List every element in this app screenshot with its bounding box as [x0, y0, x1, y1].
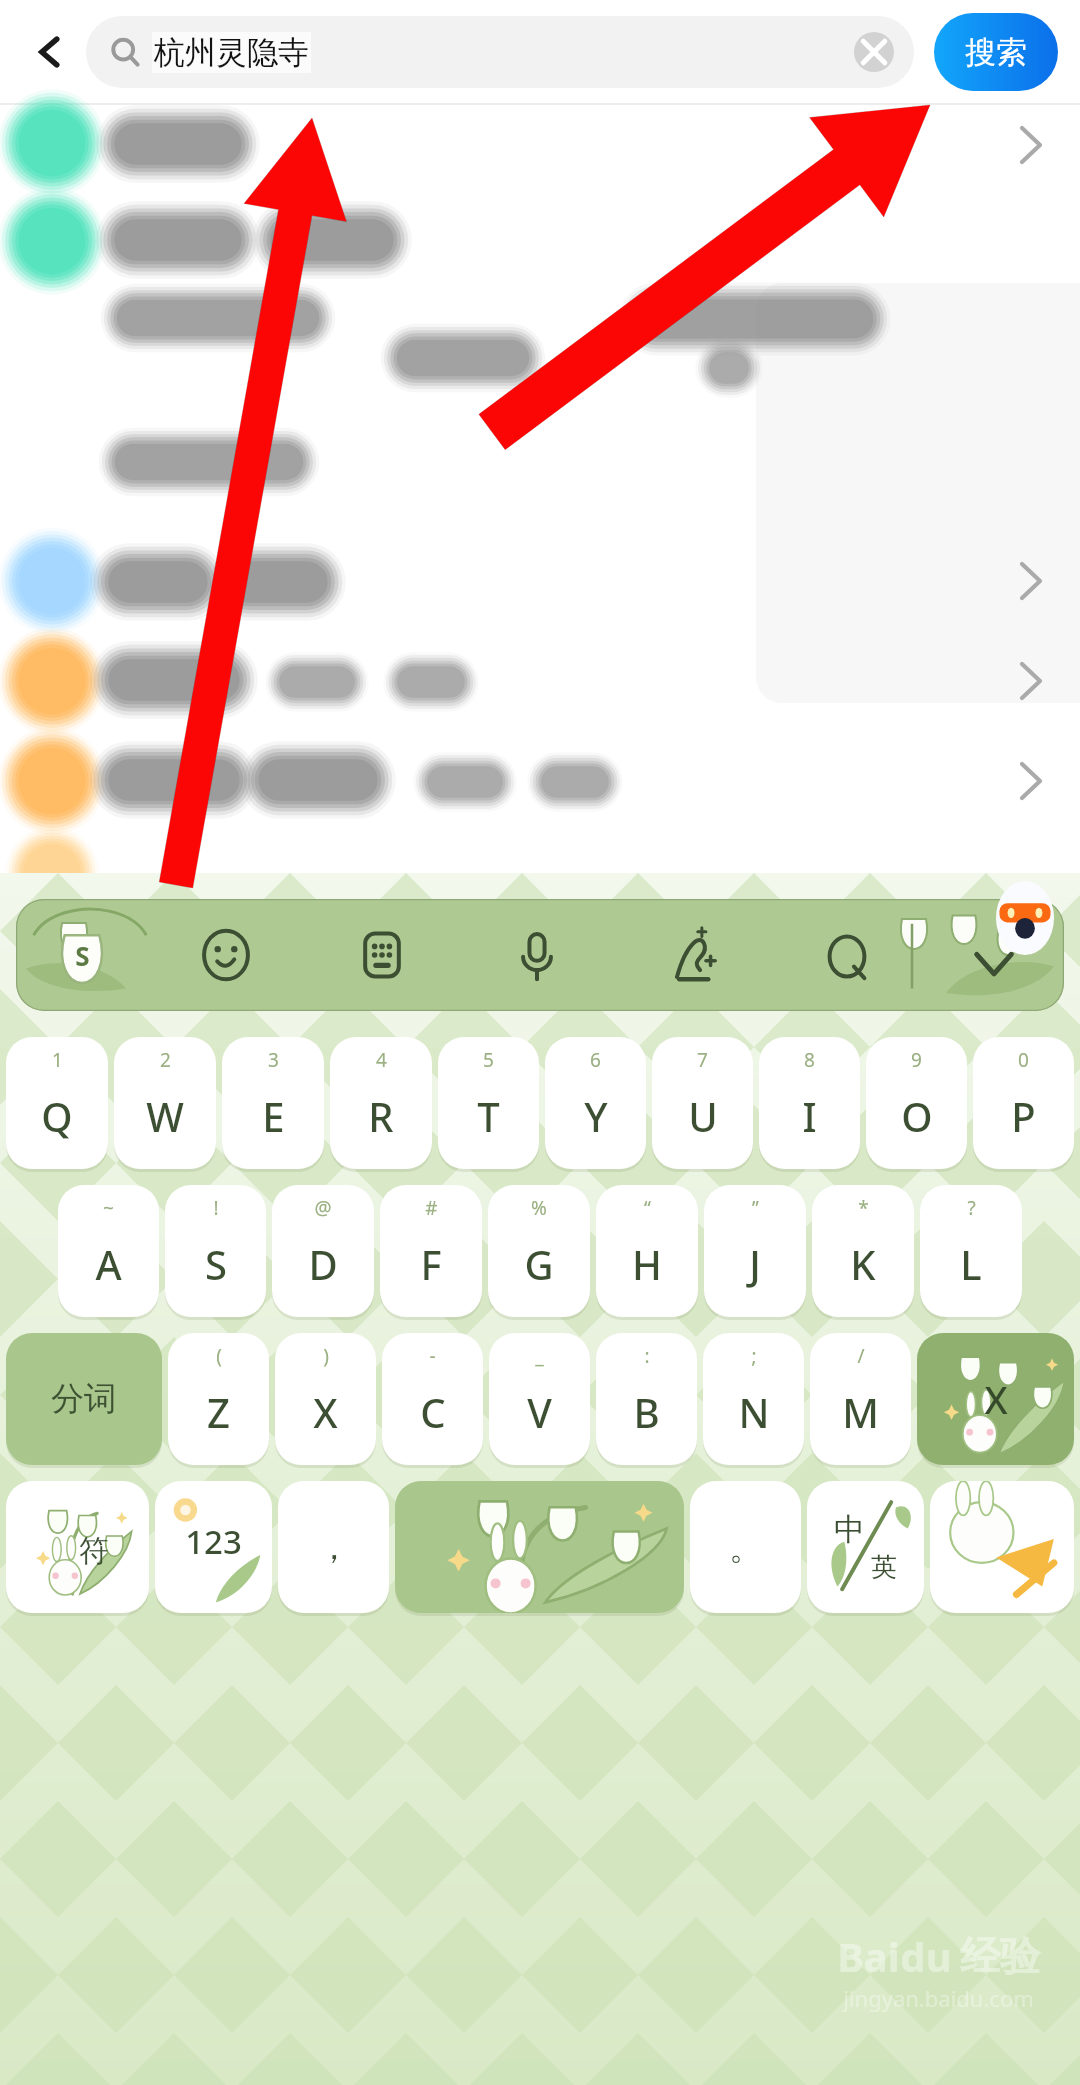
staticText: 123: [185, 1519, 242, 1564]
staticText: B: [633, 1385, 660, 1439]
button[interactable]: Handwriting: [614, 899, 769, 1011]
staticText: V: [527, 1385, 552, 1439]
button[interactable]: Symbols: [6, 1481, 149, 1613]
staticText: 搜索: [965, 33, 1027, 72]
button[interactable]: @: [272, 1185, 374, 1317]
button[interactable]: 9: [866, 1037, 967, 1169]
button[interactable]: 3: [222, 1037, 324, 1169]
button[interactable]: Keyboard layout: [304, 899, 459, 1011]
staticText: 7: [697, 1047, 708, 1073]
staticText: du: [900, 1929, 952, 1983]
staticText: Bai: [837, 1929, 900, 1983]
button[interactable]: ): [275, 1333, 376, 1465]
button[interactable]: Back: [14, 16, 86, 88]
button[interactable]: 5: [438, 1037, 539, 1169]
button[interactable]: 搜索: [934, 13, 1058, 91]
button[interactable]: 2: [114, 1037, 216, 1169]
button[interactable]: !: [165, 1185, 266, 1317]
button[interactable]: Space: [395, 1481, 684, 1613]
button[interactable]: 6: [545, 1037, 646, 1169]
staticText: Q: [41, 1089, 73, 1143]
staticText: E: [262, 1089, 285, 1143]
button[interactable]: ;: [703, 1333, 804, 1465]
button[interactable]: Hide keyboard: [924, 899, 1064, 1011]
staticText: X: [984, 1373, 1008, 1425]
staticText: X: [313, 1385, 338, 1439]
button[interactable]: (: [168, 1333, 269, 1465]
staticText: Z: [207, 1385, 230, 1439]
staticText: 3: [268, 1047, 279, 1073]
staticText: 2: [160, 1047, 171, 1073]
button[interactable]: Voice input: [459, 899, 614, 1011]
button[interactable]: “: [596, 1185, 698, 1317]
staticText: J: [749, 1237, 761, 1291]
button[interactable]: 杭州灵隐寺: [86, 16, 914, 88]
staticText: /: [857, 1343, 865, 1369]
staticText: 1: [52, 1047, 63, 1073]
staticText: 经验: [960, 1931, 1040, 1981]
button[interactable]: -: [382, 1333, 483, 1465]
staticText: 4: [376, 1047, 387, 1073]
button[interactable]: #: [380, 1185, 482, 1317]
button[interactable]: Chinese English toggle: [807, 1481, 924, 1613]
staticText: 0: [1018, 1047, 1029, 1073]
staticText: S: [205, 1237, 227, 1291]
staticText: 英: [871, 1551, 897, 1584]
staticText: ): [323, 1343, 329, 1369]
staticText: 。: [729, 1526, 763, 1569]
button[interactable]: 4: [330, 1037, 432, 1169]
staticText: 5: [483, 1047, 494, 1073]
staticText: @: [314, 1195, 332, 1221]
button[interactable]: 分词: [6, 1333, 162, 1465]
button[interactable]: /: [810, 1333, 911, 1465]
button[interactable]: 7: [652, 1037, 753, 1169]
staticText: T: [477, 1089, 500, 1143]
button[interactable]: 。: [690, 1481, 801, 1613]
button[interactable]: Delete: [917, 1333, 1074, 1465]
button[interactable]: Clear text: [852, 30, 896, 74]
staticText: R: [368, 1089, 394, 1143]
staticText: H: [632, 1237, 662, 1291]
staticText: (: [216, 1343, 222, 1369]
button[interactable]: Enter: [930, 1481, 1074, 1613]
staticText: O: [901, 1089, 933, 1143]
button[interactable]: ~: [58, 1185, 159, 1317]
staticText: “: [644, 1195, 651, 1221]
button[interactable]: ?: [920, 1185, 1022, 1317]
button[interactable]: 1: [6, 1037, 108, 1169]
button[interactable]: Emoji: [148, 899, 304, 1011]
staticText: #: [425, 1195, 438, 1221]
button[interactable]: %: [488, 1185, 590, 1317]
staticText: K: [850, 1237, 876, 1291]
staticText: F: [420, 1237, 442, 1291]
staticText: 杭州灵隐寺: [154, 33, 309, 72]
staticText: %: [531, 1195, 547, 1221]
staticText: ~: [103, 1195, 114, 1221]
button[interactable]: *: [812, 1185, 914, 1317]
staticText: I: [802, 1089, 817, 1143]
button[interactable]: 8: [759, 1037, 860, 1169]
staticText: Y: [584, 1089, 608, 1143]
button[interactable]: _: [489, 1333, 590, 1465]
button[interactable]: Numbers: [155, 1481, 272, 1613]
staticText: D: [308, 1237, 338, 1291]
staticText: _: [535, 1343, 544, 1369]
staticText: A: [95, 1237, 122, 1291]
staticText: 9: [911, 1047, 922, 1073]
staticText: S: [75, 938, 90, 973]
staticText: 8: [804, 1047, 815, 1073]
button[interactable]: Search: [769, 899, 924, 1011]
staticText: 符: [79, 1532, 109, 1570]
button[interactable]: 0: [973, 1037, 1074, 1169]
staticText: ?: [967, 1195, 976, 1221]
button[interactable]: ”: [704, 1185, 806, 1317]
staticText: -: [429, 1343, 436, 1369]
staticText: C: [420, 1385, 446, 1439]
staticText: jingyan.baidu.com: [843, 1983, 1034, 2013]
button[interactable]: Sogou input menu: [16, 899, 148, 1011]
button[interactable]: ，: [278, 1481, 389, 1613]
button[interactable]: Assistant: [996, 881, 1054, 955]
button[interactable]: :: [596, 1333, 697, 1465]
staticText: !: [213, 1195, 219, 1221]
staticText: 分词: [51, 1378, 117, 1420]
